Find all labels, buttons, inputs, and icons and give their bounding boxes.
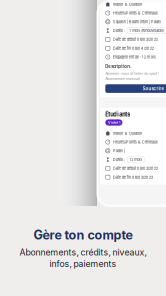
staticText: 12 mois xyxy=(129,157,142,162)
staticText: Souscrire xyxy=(142,86,164,91)
staticText: Date de fin 08/04/2022 xyxy=(113,46,154,51)
staticText: Durée : xyxy=(113,28,125,33)
staticText: Date de début 08/03/2022 xyxy=(113,37,158,42)
staticText: Indoor & Outdoor xyxy=(113,131,143,136)
staticText: Violet 1 xyxy=(108,120,120,125)
staticText: Abonnement mensuel xyxy=(105,77,140,81)
staticText: 1 mois (renouvelable) xyxy=(129,28,164,33)
staticText: Description: xyxy=(105,64,131,69)
staticText: Heures/Points & Créneaux xyxy=(113,140,158,144)
staticText: Squash | Badminton | Padel xyxy=(113,19,161,24)
staticText: infos, paiements xyxy=(49,258,116,269)
staticText: Date de fin 08/03/2023 xyxy=(113,175,153,180)
staticText: Durée : xyxy=(113,157,125,162)
staticText: Engagement de : 12 mois xyxy=(113,55,156,59)
button[interactable]: Souscrire xyxy=(105,84,166,93)
staticText: Indoor & Outdoor xyxy=(113,2,143,7)
staticText: Gère ton compte xyxy=(33,227,132,243)
staticText: Padel | xyxy=(113,148,125,153)
staticText: Date de début 08/03/2022 xyxy=(113,166,158,171)
staticText: Étudiants xyxy=(105,111,130,118)
staticText: Abonnements, crédits, niveaux, xyxy=(19,247,146,257)
staticText: Heures/Points & Créneaux xyxy=(113,11,158,15)
staticText: Abonnez-vous et faites du sport ! xyxy=(105,71,159,76)
